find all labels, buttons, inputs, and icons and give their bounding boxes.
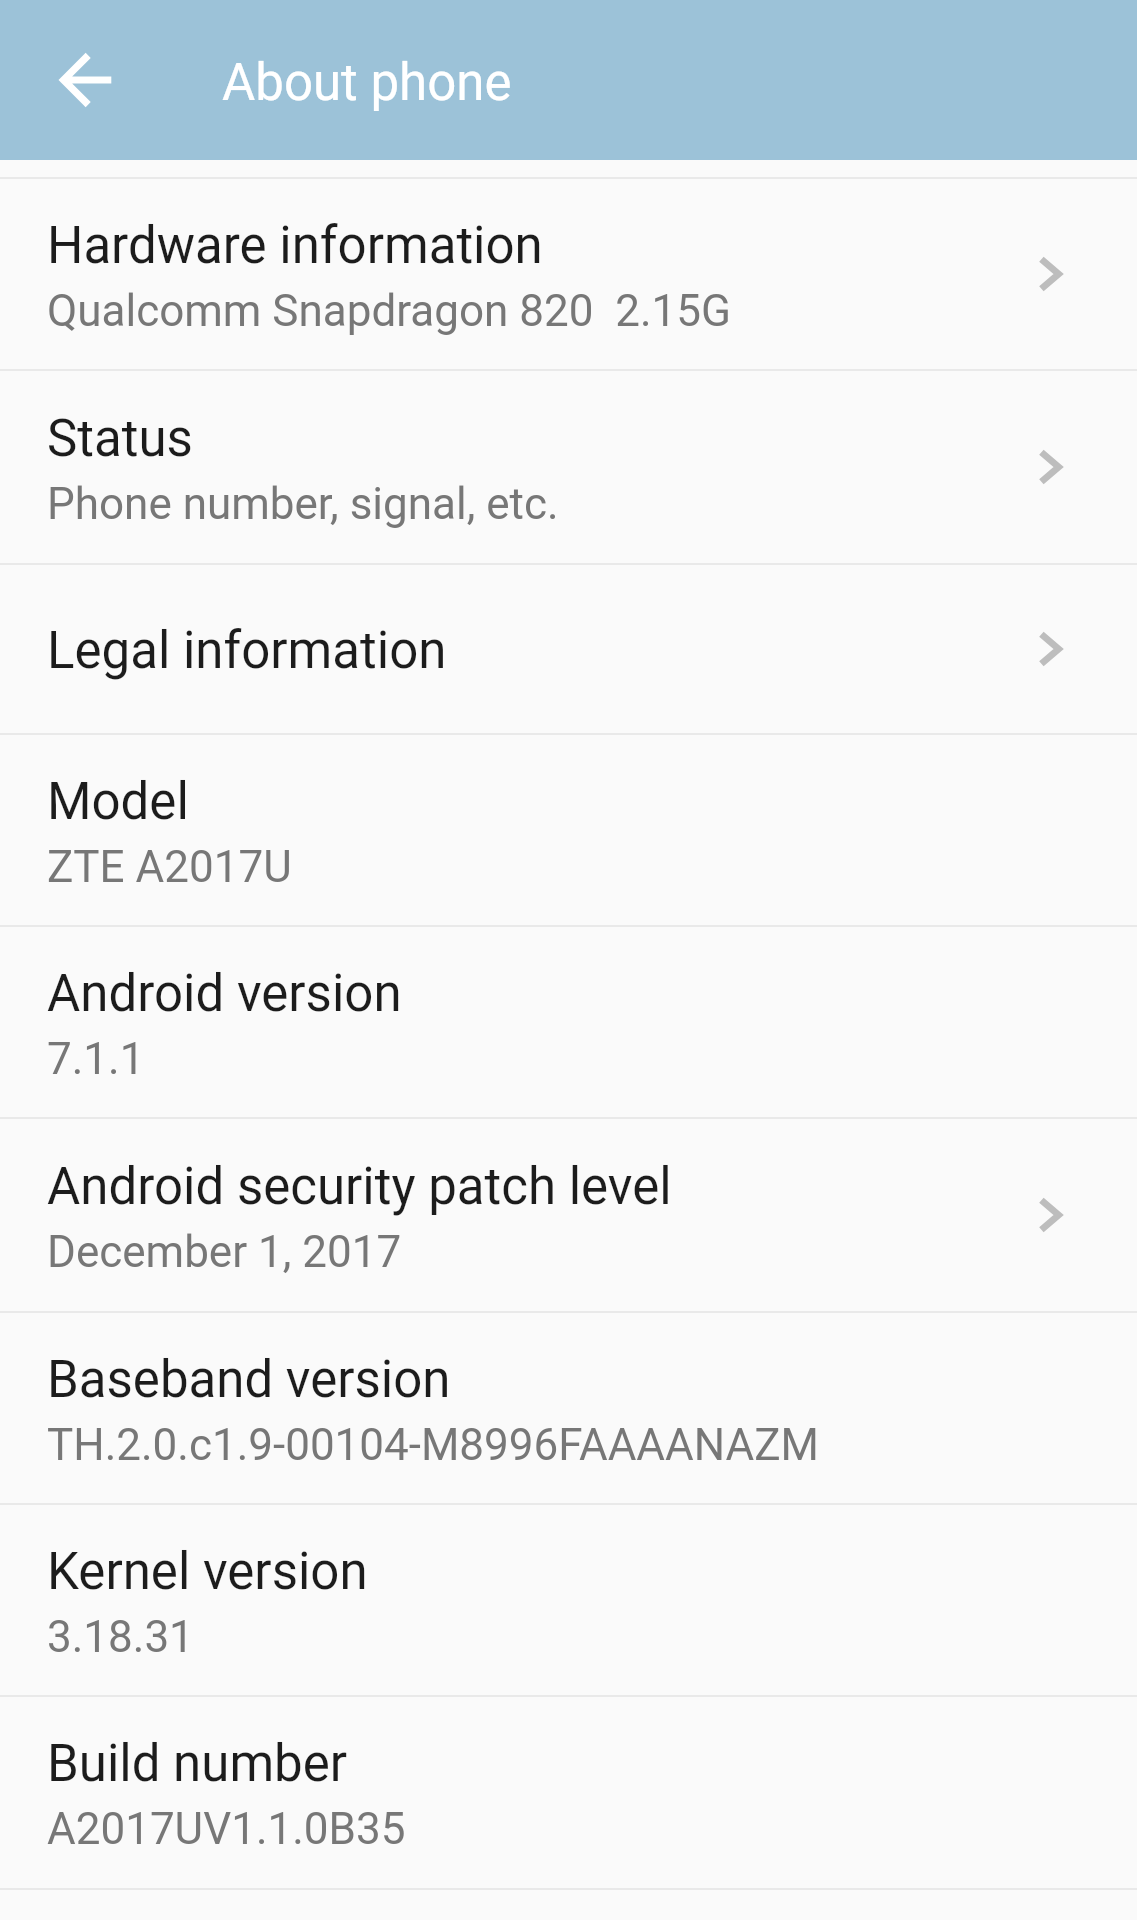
button[interactable]: Baseband version [0, 1313, 1137, 1503]
staticText: 7.1.1 [47, 1033, 145, 1085]
button[interactable]: Build number [0, 1697, 1137, 1888]
staticText: Qualcomm Snapdragon 820 2.15G [47, 285, 732, 337]
staticText: Kernel version [47, 1542, 368, 1602]
staticText: 3.18.31 [47, 1611, 194, 1663]
staticText: Baseband version [47, 1350, 451, 1410]
staticText: Android security patch level [47, 1157, 672, 1217]
button[interactable]: Status [0, 371, 1137, 563]
button[interactable]: Kernel version [0, 1505, 1137, 1695]
staticText: Phone number, signal, etc. [47, 478, 559, 530]
button[interactable]: Hardware information [0, 179, 1137, 369]
staticText: Hardware information [47, 216, 543, 276]
staticText: Android version [47, 964, 402, 1024]
staticText: TH.2.0.c1.9-00104-M8996FAAAANAZM [47, 1419, 820, 1471]
staticText: Legal information [47, 621, 447, 681]
button[interactable]: Legal information [0, 565, 1137, 733]
staticText: Build number [47, 1734, 348, 1794]
staticText: A2017UV1.1.0B35 [47, 1803, 406, 1855]
button[interactable]: Android security patch level [0, 1119, 1137, 1311]
staticText: Model [47, 772, 189, 832]
staticText: ZTE A2017U [47, 841, 292, 893]
staticText: December 1, 2017 [47, 1226, 402, 1278]
button[interactable]: Back [36, 30, 136, 130]
staticText: About phone [222, 53, 512, 113]
button[interactable]: Android version [0, 927, 1137, 1117]
button[interactable]: Model [0, 735, 1137, 925]
staticText: Status [47, 409, 193, 469]
